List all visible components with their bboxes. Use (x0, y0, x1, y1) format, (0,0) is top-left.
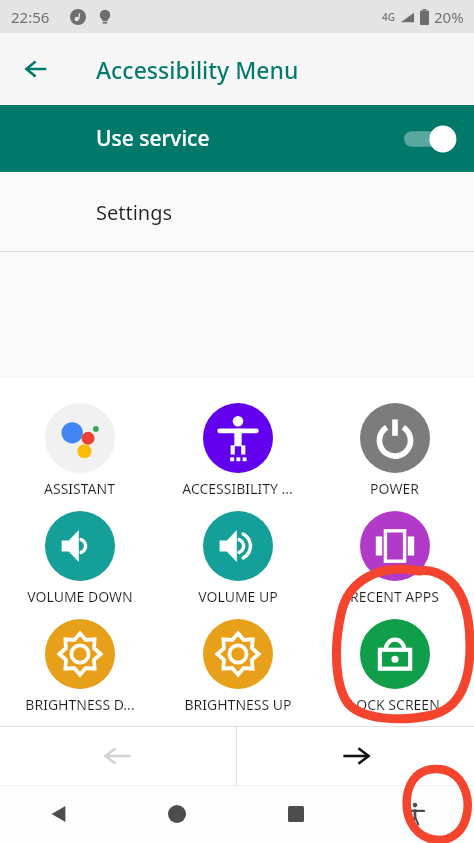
button[interactable]: POWER (317, 401, 472, 500)
button[interactable]: Previous page (0, 727, 236, 785)
button[interactable]: ASSISTANT (2, 401, 157, 500)
button[interactable]: Recents (236, 785, 355, 843)
button[interactable]: VOLUME DOWN (2, 509, 157, 608)
staticText: 4G (382, 10, 395, 24)
button[interactable]: RECENT APPS (317, 509, 472, 608)
staticText: RECENT APPS (350, 587, 439, 606)
button[interactable]: BRIGHTNESS UP (160, 617, 315, 716)
staticText: Settings (96, 199, 173, 226)
button[interactable]: ACCESSIBILITY ... (160, 401, 315, 500)
button[interactable]: LOCK SCREEN (317, 617, 472, 716)
staticText: 22:56 (11, 7, 50, 27)
button[interactable]: Back (0, 785, 118, 843)
staticText: Use service (96, 124, 210, 153)
button[interactable]: BRIGHTNESS D... (2, 617, 157, 716)
staticText: LOCK SCREEN (349, 695, 440, 714)
button[interactable]: Back (14, 47, 58, 91)
button[interactable]: Accessibility menu (355, 785, 474, 843)
staticText: ASSISTANT (44, 479, 115, 498)
button[interactable]: Home (118, 785, 236, 843)
staticText: ACCESSIBILITY ... (182, 479, 293, 498)
button[interactable]: Next page (237, 727, 474, 785)
staticText: BRIGHTNESS UP (184, 695, 292, 714)
button[interactable]: Use service (0, 105, 474, 172)
staticText: VOLUME UP (198, 587, 278, 606)
staticText: Accessibility Menu (96, 54, 299, 85)
staticText: POWER (370, 479, 419, 498)
staticText: BRIGHTNESS D... (25, 695, 135, 714)
button[interactable]: Settings (0, 172, 474, 252)
staticText: VOLUME DOWN (27, 587, 133, 606)
button[interactable]: VOLUME UP (160, 509, 315, 608)
staticText: 20% (434, 7, 464, 27)
